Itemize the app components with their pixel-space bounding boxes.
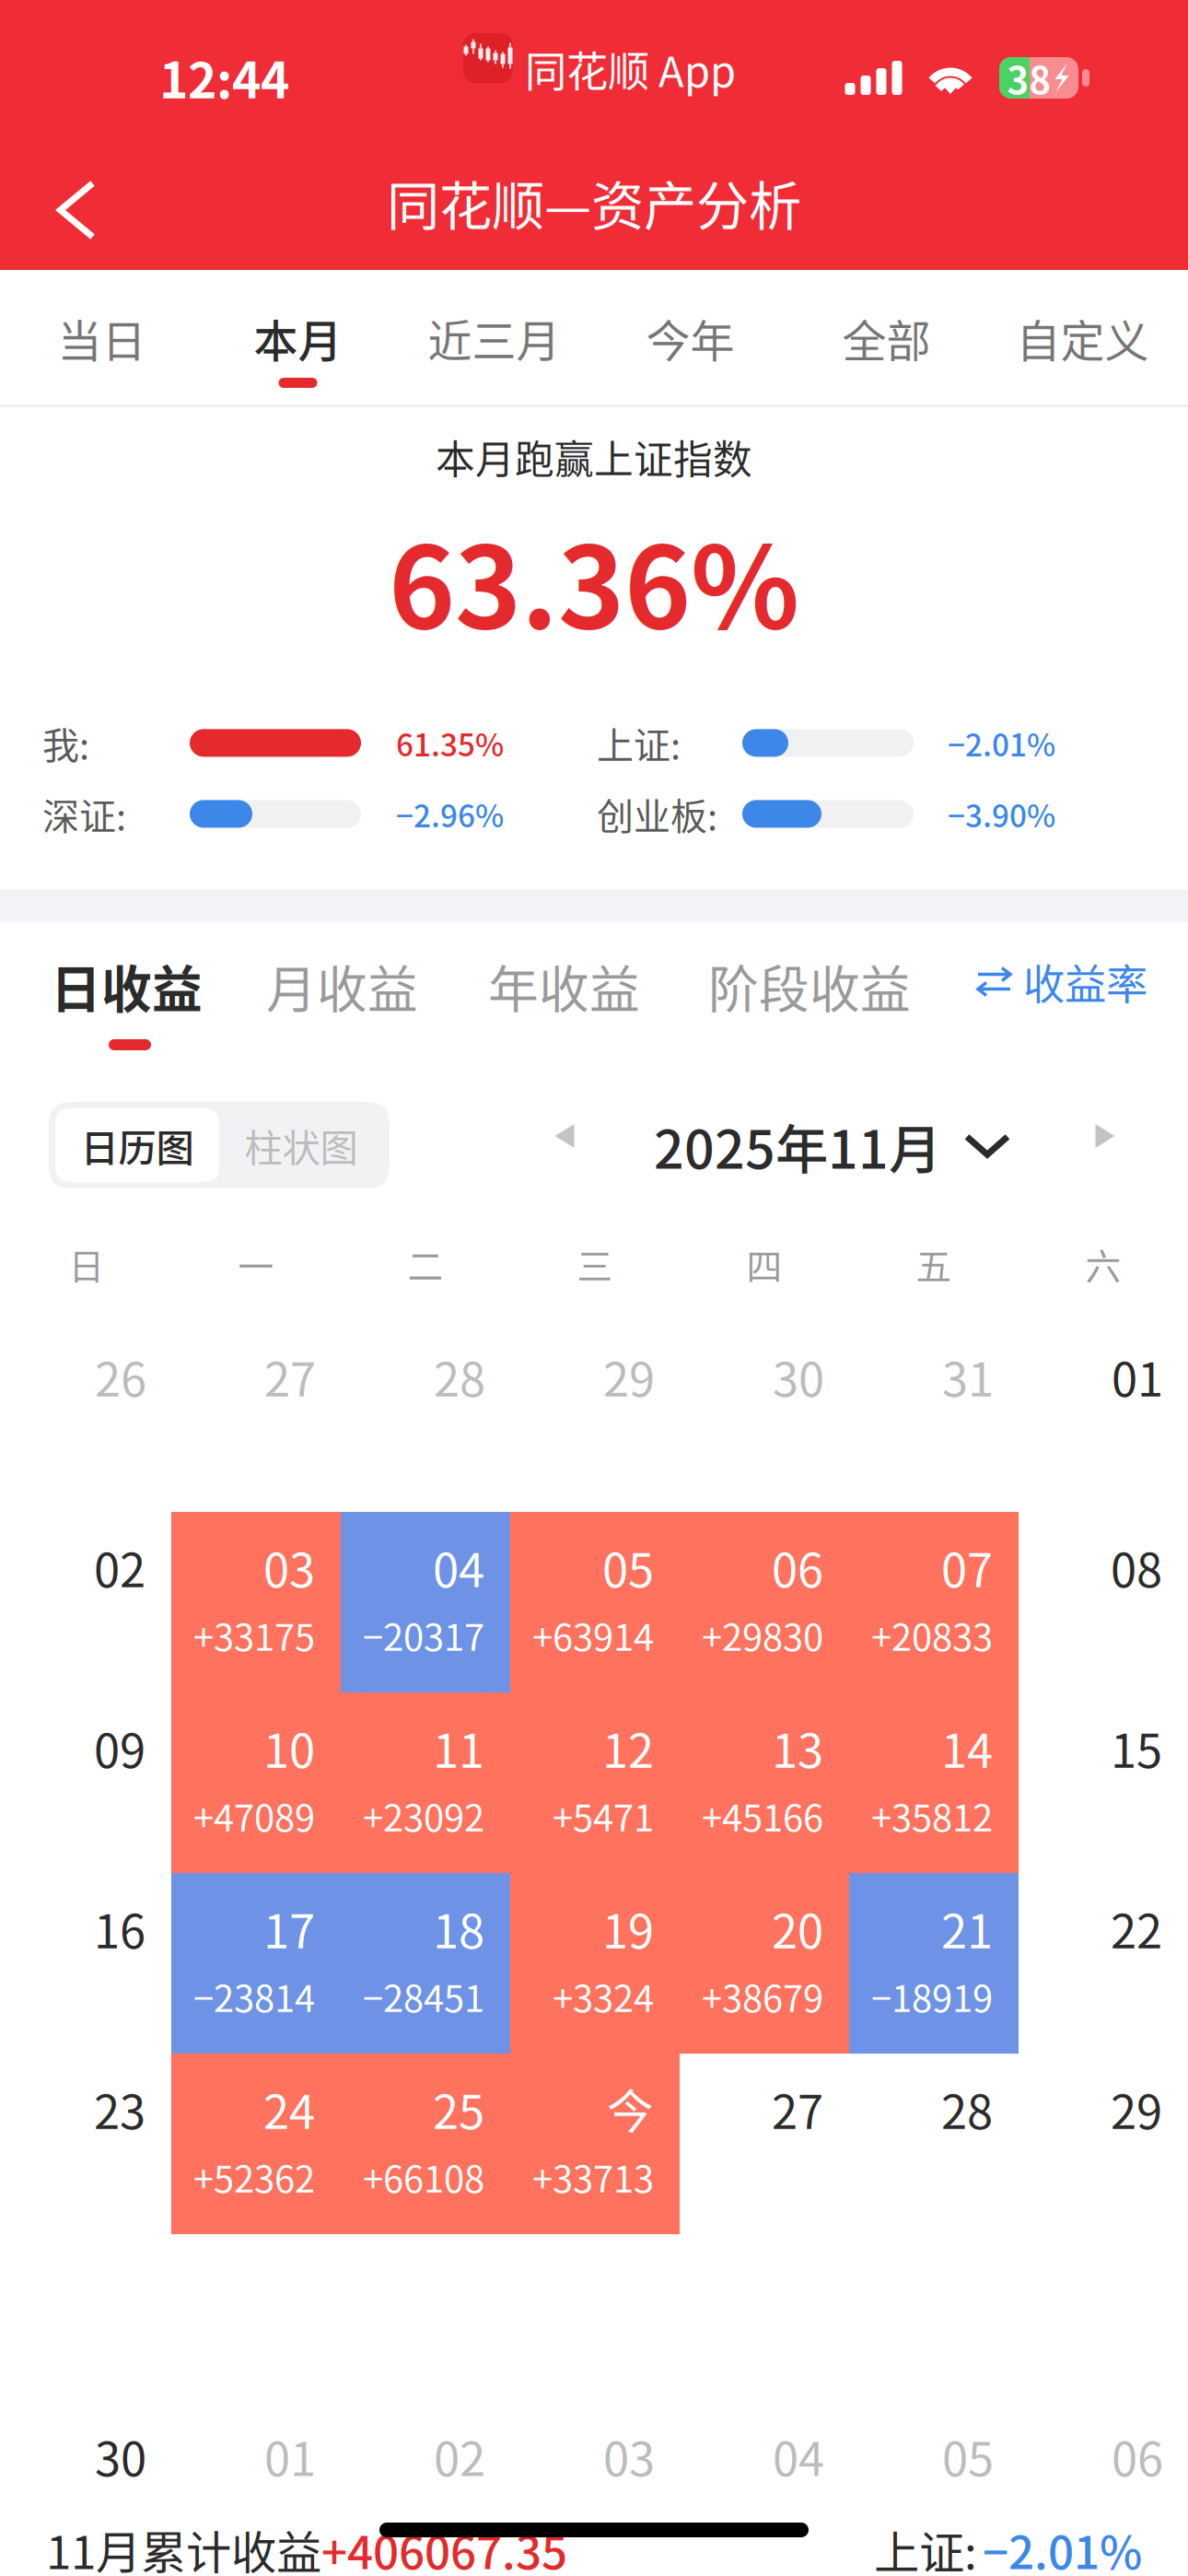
staticText: 02 xyxy=(434,2422,485,2490)
staticText: 21 xyxy=(941,1894,993,1962)
staticText: 本月 xyxy=(254,306,342,370)
staticText: 一 xyxy=(238,1238,274,1290)
staticText: 年收益 xyxy=(488,949,640,1022)
button[interactable]: 日历图 xyxy=(55,1108,219,1182)
staticText: 28 xyxy=(434,1342,485,1410)
staticText: 日 xyxy=(69,1238,105,1290)
staticText: +33713 xyxy=(532,2150,654,2203)
staticText: 14 xyxy=(941,1714,993,1781)
staticText: +38679 xyxy=(702,1969,823,2023)
staticText: +63914 xyxy=(532,1608,654,1661)
staticText: +47089 xyxy=(193,1789,315,1842)
button[interactable]: Previous month xyxy=(533,1101,596,1171)
staticText: 31 xyxy=(942,1342,994,1410)
staticText: 收益率 xyxy=(1023,951,1147,1012)
staticText: 13 xyxy=(772,1714,823,1781)
staticText: 2025年11月 xyxy=(654,1107,941,1184)
staticText: 10 xyxy=(263,1714,315,1781)
staticText: 本月跑赢上证指数 xyxy=(436,428,752,485)
staticText: 日历图 xyxy=(81,1118,194,1173)
button[interactable]: 今年 xyxy=(592,270,788,407)
staticText: 16 xyxy=(94,1894,146,1962)
staticText: 30 xyxy=(95,2422,146,2490)
staticText: 07 xyxy=(941,1533,993,1601)
staticText: 自定义 xyxy=(1016,306,1149,370)
staticText: 日收益 xyxy=(51,949,203,1022)
button[interactable]: 本月 xyxy=(200,270,396,407)
staticText: 27 xyxy=(264,1342,316,1410)
staticText: 11月累计收益 xyxy=(46,2516,321,2576)
staticText: 24 xyxy=(263,2075,315,2142)
staticText: 阶段收益 xyxy=(708,949,911,1022)
staticText: 28 xyxy=(941,2075,993,2142)
staticText: +52362 xyxy=(193,2150,315,2203)
staticText: 06 xyxy=(1112,2422,1163,2490)
button[interactable]: 年收益 xyxy=(488,922,708,1069)
staticText: 20 xyxy=(772,1894,823,1962)
staticText: 12:44 xyxy=(159,41,289,113)
staticText: 02 xyxy=(94,1533,146,1601)
staticText: +3324 xyxy=(553,1969,654,2023)
staticText: −3.90% xyxy=(948,792,1055,836)
staticText: +29830 xyxy=(702,1608,823,1661)
button[interactable]: 收益率 xyxy=(976,951,1188,1040)
button[interactable]: Next month xyxy=(1074,1101,1136,1171)
staticText: −2.01% xyxy=(983,2516,1142,2576)
staticText: 05 xyxy=(602,1533,654,1601)
staticText: +33175 xyxy=(193,1608,315,1661)
staticText: 06 xyxy=(772,1533,823,1601)
staticText: 今 xyxy=(607,2075,654,2142)
button[interactable]: 柱状图 xyxy=(219,1108,383,1182)
staticText: 创业板: xyxy=(597,787,717,841)
staticText: 03 xyxy=(263,1533,315,1601)
staticText: 63.36% xyxy=(389,497,799,661)
staticText: 04 xyxy=(433,1533,484,1601)
staticText: +20833 xyxy=(871,1608,993,1661)
staticText: 18 xyxy=(433,1894,484,1962)
staticText: 61.35% xyxy=(396,721,504,765)
staticText: +66108 xyxy=(363,2150,484,2203)
button[interactable]: Back xyxy=(21,155,132,265)
button[interactable]: 近三月 xyxy=(396,270,592,407)
staticText: +406067.35 xyxy=(321,2516,567,2576)
staticText: 同花顺—资产分析 xyxy=(387,164,801,240)
staticText: 19 xyxy=(602,1894,654,1962)
staticText: 月收益 xyxy=(266,949,418,1022)
staticText: −20317 xyxy=(363,1608,484,1661)
staticText: 四 xyxy=(746,1238,782,1290)
staticText: 03 xyxy=(603,2422,655,2490)
staticText: 上证: xyxy=(597,716,681,770)
staticText: 柱状图 xyxy=(245,1118,358,1173)
staticText: +5471 xyxy=(553,1789,654,1842)
button[interactable]: 日收益 xyxy=(51,922,266,1069)
staticText: 09 xyxy=(94,1714,146,1781)
staticText: 11 xyxy=(433,1714,484,1781)
button[interactable]: 月收益 xyxy=(266,922,488,1069)
staticText: −23814 xyxy=(193,1969,315,2023)
staticText: 17 xyxy=(263,1894,315,1962)
staticText: 05 xyxy=(942,2422,994,2490)
staticText: −2.01% xyxy=(948,721,1055,765)
staticText: 六 xyxy=(1085,1238,1121,1290)
staticText: 深证: xyxy=(42,787,126,841)
button[interactable]: 阶段收益 xyxy=(708,922,938,1069)
button[interactable]: 当日 xyxy=(4,270,200,407)
staticText: −18919 xyxy=(871,1969,993,2023)
staticText: 我: xyxy=(42,716,89,770)
staticText: 同花顺 App xyxy=(525,39,736,99)
staticText: 04 xyxy=(773,2422,824,2490)
button[interactable]: 自定义 xyxy=(984,270,1181,407)
button[interactable]: 全部 xyxy=(788,270,984,407)
staticText: 当日 xyxy=(58,306,146,370)
staticText: 二 xyxy=(408,1238,443,1290)
staticText: 22 xyxy=(1111,1894,1162,1962)
staticText: 30 xyxy=(773,1342,824,1410)
staticText: 五 xyxy=(916,1238,952,1290)
staticText: 近三月 xyxy=(428,306,560,370)
staticText: +23092 xyxy=(363,1789,484,1842)
staticText: 08 xyxy=(1111,1533,1162,1601)
staticText: −2.96% xyxy=(396,792,504,836)
staticText: 三 xyxy=(577,1238,613,1290)
button[interactable]: 2025年11月 xyxy=(654,1107,1007,1184)
staticText: 15 xyxy=(1111,1714,1162,1781)
